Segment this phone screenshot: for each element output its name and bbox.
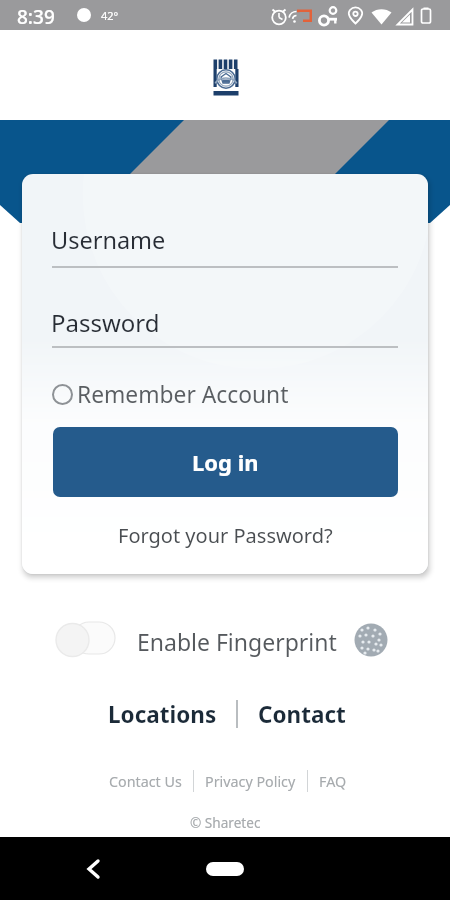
button[interactable]: FAQ [319, 772, 347, 791]
button[interactable]: Locations [108, 699, 217, 730]
staticText: 8:39 [17, 4, 55, 30]
button[interactable]: Privacy Policy [205, 772, 296, 791]
staticText: Remember Account [77, 379, 289, 409]
staticText: © Sharetec [190, 813, 261, 832]
button[interactable]: Forgot your Password? [118, 522, 333, 549]
button[interactable]: Home [206, 862, 244, 876]
button[interactable]: Remember Account [52, 379, 289, 409]
button[interactable]: Back [80, 853, 108, 881]
button[interactable]: Contact Us [109, 772, 182, 791]
button[interactable]: Log in [53, 427, 398, 497]
staticText: 42° [101, 8, 119, 23]
staticText: Password [51, 306, 160, 339]
button[interactable]: Enable Fingerprint [54, 620, 118, 660]
staticText: Enable Fingerprint [137, 626, 337, 657]
staticText: Log in [192, 447, 259, 477]
staticText: Username [51, 224, 166, 256]
button[interactable]: Contact [258, 699, 346, 730]
button[interactable]: Fingerprint login [354, 623, 388, 657]
